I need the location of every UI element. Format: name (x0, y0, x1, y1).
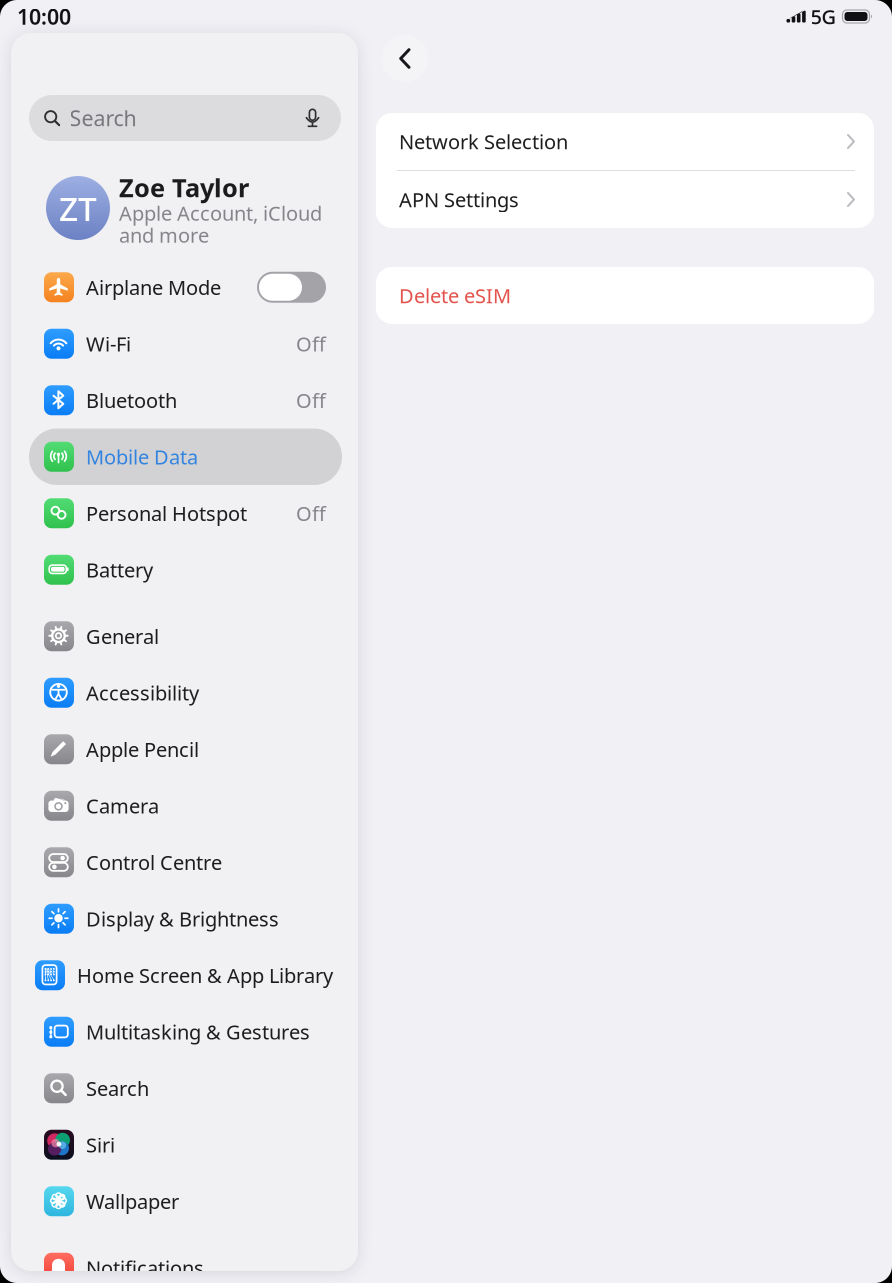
staticText: Display & Brightness (86, 905, 279, 932)
staticText: Notifications (86, 1254, 204, 1281)
button[interactable]: Wi-Fi (11, 315, 358, 372)
staticText: Zoe Taylor (119, 171, 249, 204)
staticText: Bluetooth (86, 387, 177, 414)
staticText: Battery (86, 556, 153, 583)
button[interactable]: Delete eSIM (376, 267, 874, 324)
staticText: Siri (86, 1131, 115, 1158)
button[interactable]: ZT (11, 141, 358, 259)
staticText: Home Screen & App Library (77, 962, 333, 989)
staticText: Delete eSIM (399, 282, 511, 309)
staticText: Accessibility (86, 679, 199, 706)
staticText: Control Centre (86, 849, 222, 876)
button[interactable]: Accessibility (11, 664, 358, 721)
button[interactable]: Network Selection (376, 113, 874, 170)
staticText: Wi-Fi (86, 330, 131, 357)
button[interactable]: APN Settings (376, 171, 874, 228)
staticText: Mobile Data (86, 443, 198, 470)
staticText: Off (296, 500, 326, 527)
staticText: Wallpaper (86, 1188, 179, 1215)
staticText: General (86, 623, 159, 650)
button[interactable]: Battery (11, 541, 358, 598)
button[interactable]: Back (381, 35, 428, 82)
button[interactable]: Search (11, 1060, 358, 1116)
button[interactable]: General (11, 608, 358, 664)
button[interactable]: Home Screen & App Library (11, 947, 358, 1003)
staticText: Search (86, 1075, 149, 1102)
button[interactable]: Display & Brightness (11, 890, 358, 947)
button[interactable]: Apple Pencil (11, 721, 358, 777)
staticText: Airplane Mode (86, 274, 221, 301)
button[interactable]: Siri (11, 1116, 358, 1173)
staticText: Multitasking & Gestures (86, 1018, 310, 1045)
button[interactable]: Airplane Mode (11, 259, 358, 315)
button[interactable]: Multitasking & Gestures (11, 1003, 358, 1060)
staticText: Search (69, 104, 136, 132)
button[interactable]: Wallpaper (11, 1173, 358, 1229)
button[interactable]: Mobile Data (11, 428, 358, 485)
staticText: Off (296, 330, 326, 357)
button[interactable]: Bluetooth (11, 372, 358, 428)
staticText: and more (119, 222, 209, 248)
button[interactable]: Personal Hotspot (11, 485, 358, 541)
staticText: 5G (810, 3, 836, 30)
button[interactable]: Camera (11, 777, 358, 834)
button[interactable]: Control Centre (11, 834, 358, 890)
button[interactable]: Notifications (11, 1239, 358, 1283)
staticText: Network Selection (399, 128, 568, 155)
staticText: APN Settings (399, 186, 519, 213)
staticText: Off (296, 387, 326, 414)
staticText: Camera (86, 792, 159, 819)
staticText: ZT (59, 186, 97, 230)
staticText: 10:00 (17, 2, 71, 31)
staticText: Personal Hotspot (86, 500, 247, 527)
staticText: Apple Pencil (86, 736, 199, 763)
staticText: Apple Account, iCloud (119, 200, 322, 226)
